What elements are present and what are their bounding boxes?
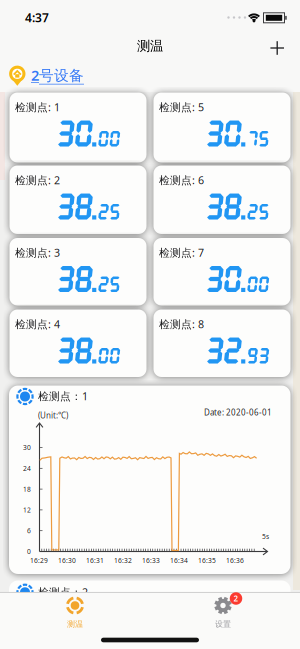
button[interactable]: 2 — [165, 594, 285, 642]
staticText: 30 — [23, 443, 31, 452]
staticText: Date: 2020-06-01 — [204, 407, 272, 418]
staticText: 16:32 — [114, 556, 132, 565]
staticText: 检测点: 7 — [159, 245, 204, 260]
staticText: 12 — [23, 505, 31, 514]
staticText: 16:36 — [226, 556, 244, 565]
staticText: 测温 — [137, 38, 163, 54]
button[interactable]: 检测点: 4 — [9, 309, 146, 377]
button[interactable]: 检测点: 5 — [153, 92, 290, 162]
button[interactable]: 检测点: 1 — [9, 92, 146, 162]
button[interactable]: 检测点: 3 — [9, 238, 146, 305]
button[interactable]: Add — [262, 33, 292, 63]
staticText: 6 — [27, 526, 31, 535]
button[interactable]: 检测点: 6 — [153, 165, 290, 234]
button[interactable]: 测温 — [15, 594, 135, 642]
staticText: 24 — [23, 464, 31, 473]
staticText: 检测点: 6 — [159, 173, 204, 187]
staticText: 测温 — [67, 619, 83, 629]
staticText: 检测点: 8 — [159, 317, 204, 331]
staticText: 16:30 — [58, 556, 76, 565]
staticText: 检测点: 5 — [159, 100, 204, 114]
staticText: 检测点：2 — [38, 585, 88, 599]
staticText: 18 — [23, 485, 31, 494]
staticText: 检测点: 1 — [15, 100, 60, 114]
staticText: 16:34 — [170, 556, 188, 565]
button[interactable]: 检测点: 2 — [9, 165, 146, 234]
staticText: 检测点：1 — [38, 389, 88, 403]
staticText: 检测点: 4 — [15, 317, 60, 331]
staticText: 16:29 — [30, 556, 48, 565]
staticText: 0 — [27, 547, 31, 556]
button[interactable]: 检测点: 8 — [153, 309, 290, 377]
button[interactable]: 2号设备 — [4, 62, 114, 89]
staticText: 16:33 — [142, 556, 160, 565]
staticText: 检测点: 2 — [15, 173, 60, 187]
staticText: 2号设备 — [31, 65, 84, 85]
staticText: (Unit:°C) — [38, 410, 68, 421]
button[interactable]: 检测点: 7 — [153, 238, 290, 305]
staticText: 2 — [233, 593, 238, 604]
staticText: 16:35 — [198, 556, 216, 565]
staticText: 16:31 — [86, 556, 104, 565]
staticText: 5s — [262, 532, 269, 541]
staticText: 设置 — [215, 619, 231, 629]
staticText: 4:37 — [25, 9, 49, 25]
staticText: 检测点: 3 — [15, 245, 60, 260]
